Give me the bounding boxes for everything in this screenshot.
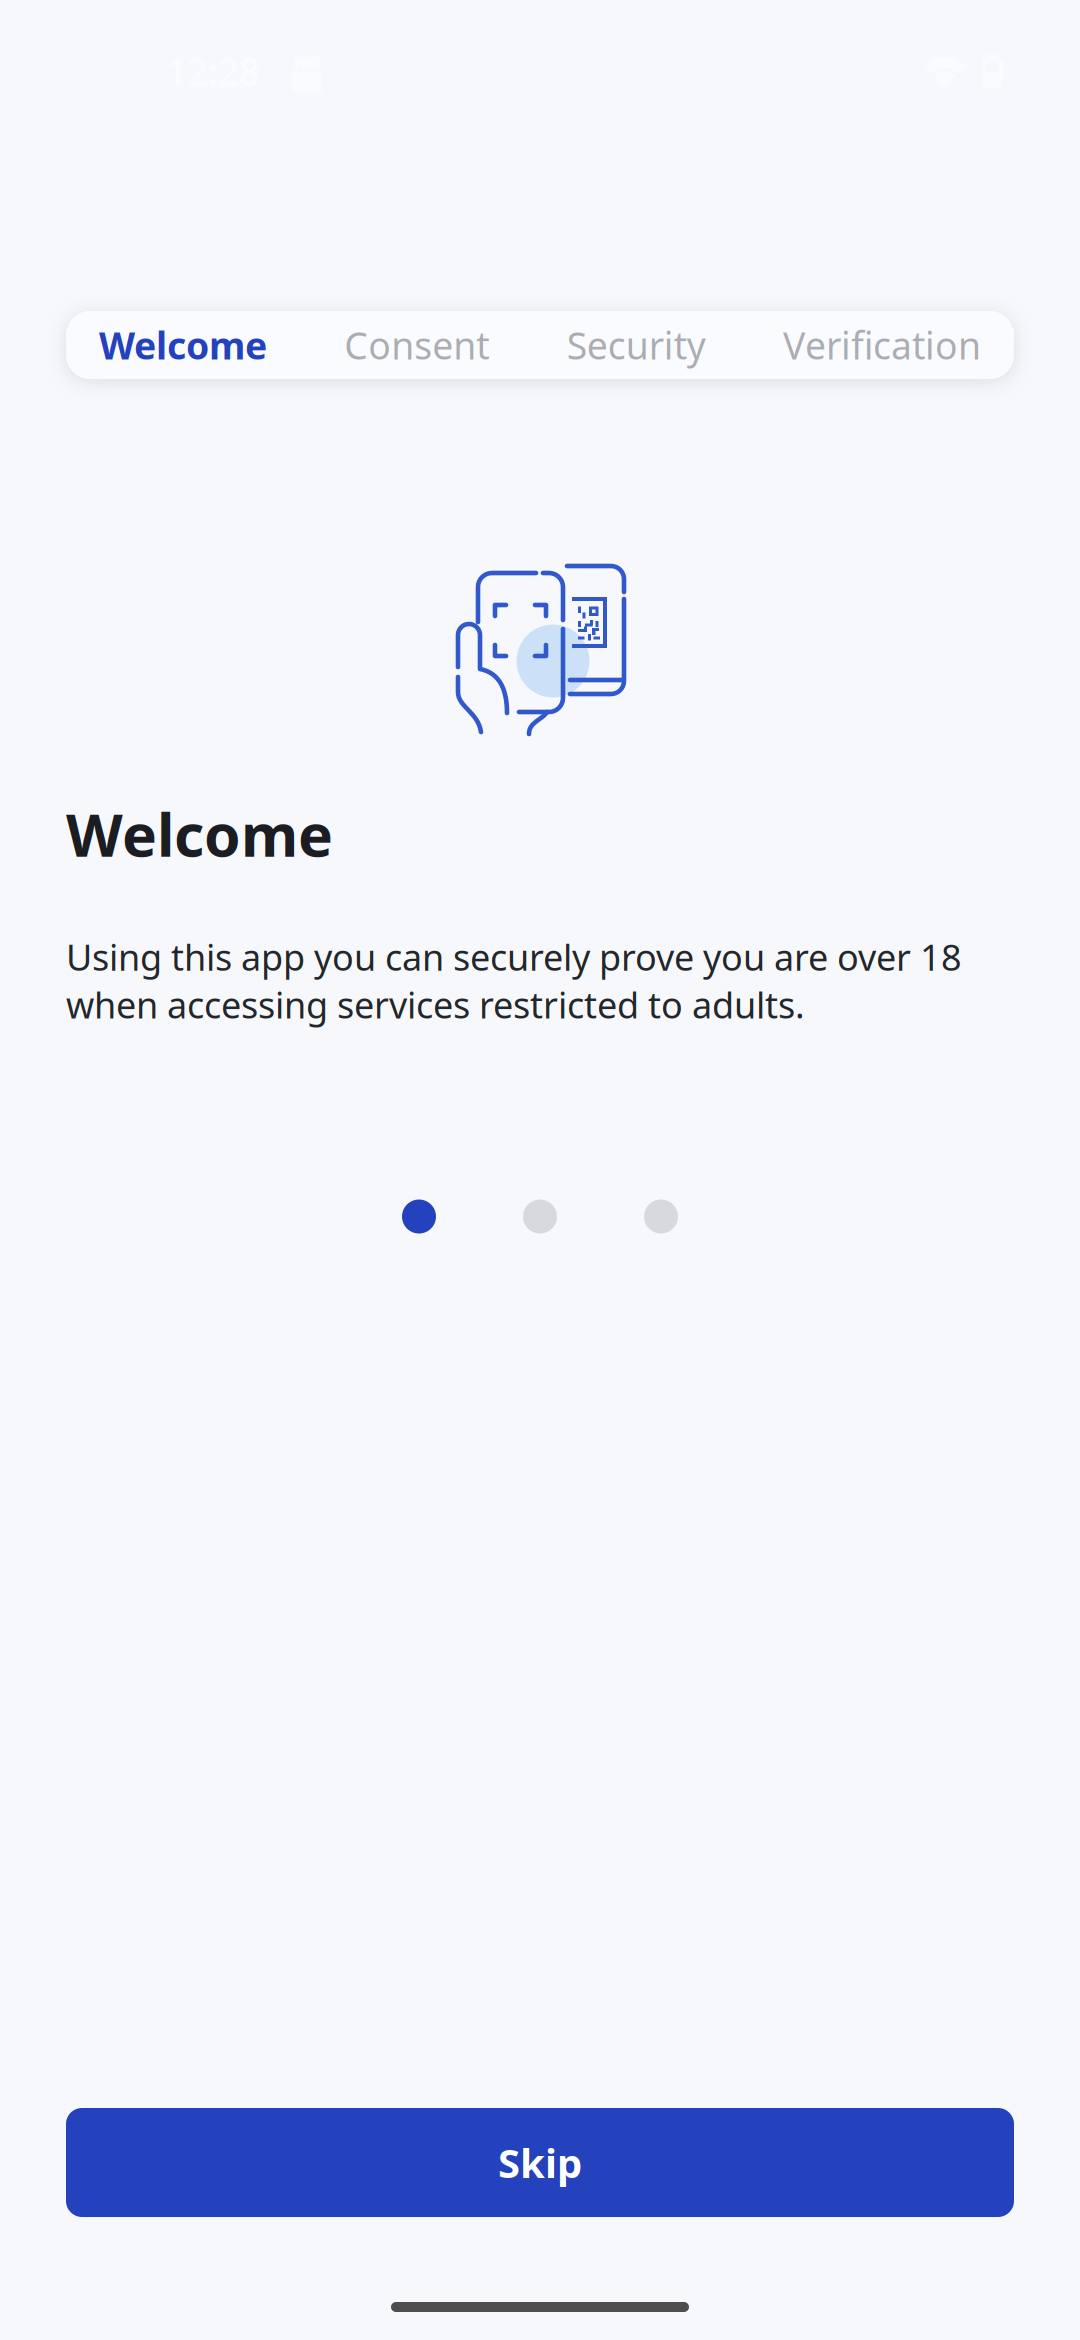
button[interactable]: Consent	[344, 320, 489, 370]
staticText: Welcome	[66, 795, 333, 873]
staticText: Security	[567, 320, 706, 370]
staticText: Consent	[344, 320, 489, 370]
staticText: Skip	[498, 2136, 582, 2189]
button[interactable]: Page 3 of 3	[644, 1199, 678, 1233]
button[interactable]: Welcome	[99, 320, 267, 370]
button[interactable]: Page 1 of 3, current page	[402, 1199, 436, 1233]
staticText: Welcome	[99, 320, 267, 370]
button[interactable]: Security	[567, 320, 706, 370]
staticText: Verification	[783, 320, 981, 370]
button[interactable]: Page 2 of 3	[523, 1199, 557, 1233]
button[interactable]: Verification	[783, 320, 981, 370]
button[interactable]: Skip	[66, 2108, 1014, 2217]
staticText: Using this app you can securely prove yo…	[66, 933, 962, 1028]
